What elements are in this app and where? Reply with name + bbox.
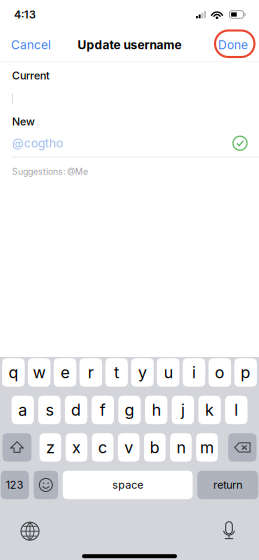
staticText: @cogtho — [12, 136, 63, 150]
staticText: e — [60, 363, 69, 382]
button[interactable]: z — [40, 433, 61, 462]
button[interactable]: b — [144, 433, 166, 462]
staticText: c — [98, 438, 107, 457]
button[interactable]: Emoji — [34, 471, 58, 499]
button[interactable]: h — [145, 396, 167, 424]
staticText: Update username — [77, 38, 181, 52]
button[interactable]: Shift — [2, 433, 31, 462]
staticText: Done — [218, 38, 248, 52]
button[interactable]: q — [2, 358, 25, 387]
button[interactable]: Cancel — [11, 32, 63, 58]
button[interactable]: j — [172, 396, 194, 424]
staticText: k — [205, 400, 214, 420]
staticText: New — [12, 115, 35, 128]
button[interactable]: Delete — [228, 433, 256, 462]
staticText: s — [45, 400, 53, 420]
staticText: w — [33, 363, 46, 382]
button[interactable]: k — [198, 396, 221, 424]
button[interactable]: 123 — [1, 471, 29, 499]
staticText: r — [88, 363, 94, 382]
staticText: u — [164, 363, 173, 382]
staticText: f — [100, 400, 106, 420]
button[interactable]: return — [197, 471, 258, 499]
button[interactable]: v — [118, 433, 139, 462]
staticText: o — [215, 363, 225, 382]
staticText: i — [192, 363, 196, 382]
staticText: t — [114, 363, 119, 382]
staticText: j — [181, 400, 185, 420]
button[interactable]: r — [79, 358, 102, 387]
staticText: y — [138, 363, 147, 382]
button[interactable]: u — [157, 358, 179, 387]
staticText: d — [71, 400, 81, 420]
button[interactable]: s — [38, 396, 61, 424]
staticText: v — [124, 438, 133, 457]
button[interactable]: y — [131, 358, 154, 387]
button[interactable]: c — [92, 433, 113, 462]
staticText: z — [46, 438, 55, 457]
staticText: p — [241, 363, 251, 382]
button[interactable]: Next keyboard — [11, 516, 49, 546]
button[interactable]: Dictation — [210, 516, 248, 546]
button[interactable]: w — [28, 358, 50, 387]
staticText: q — [8, 363, 18, 382]
button[interactable]: space — [63, 471, 193, 499]
button[interactable]: x — [66, 433, 87, 462]
staticText: Cancel — [11, 38, 51, 52]
button[interactable]: t — [105, 358, 128, 387]
button[interactable]: f — [92, 396, 114, 424]
button[interactable]: o — [208, 358, 231, 387]
button[interactable]: g — [118, 396, 141, 424]
staticText: Current — [12, 69, 50, 82]
button[interactable]: m — [196, 433, 218, 462]
button[interactable]: d — [65, 396, 87, 424]
staticText: return — [213, 478, 242, 491]
staticText: x — [72, 438, 81, 457]
button[interactable]: i — [183, 358, 205, 387]
button[interactable]: e — [54, 358, 76, 387]
staticText: 4:13 — [14, 8, 36, 21]
staticText: Suggestions: @Me — [12, 166, 88, 177]
staticText: 123 — [6, 478, 24, 491]
staticText: n — [176, 438, 185, 457]
staticText: b — [150, 438, 160, 457]
staticText: g — [124, 400, 134, 420]
button[interactable]: Done — [196, 32, 248, 58]
button[interactable]: a — [11, 396, 34, 424]
button[interactable]: n — [170, 433, 192, 462]
staticText: m — [200, 438, 214, 457]
staticText: l — [234, 400, 238, 420]
staticText: a — [18, 400, 27, 420]
button[interactable]: l — [225, 396, 247, 424]
staticText: h — [152, 400, 161, 420]
staticText: space — [112, 478, 143, 491]
button[interactable]: p — [234, 358, 257, 387]
